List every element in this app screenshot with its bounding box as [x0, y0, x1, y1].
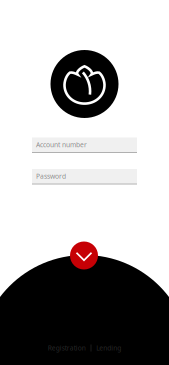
button[interactable]: Sign in: [70, 241, 98, 269]
staticText: Registration: [48, 344, 86, 352]
staticText: Account number: [36, 140, 87, 149]
button[interactable]: Lending: [96, 344, 121, 352]
staticText: Lending: [96, 344, 121, 352]
button[interactable]: Registration: [48, 344, 86, 352]
staticText: Password: [36, 172, 66, 181]
